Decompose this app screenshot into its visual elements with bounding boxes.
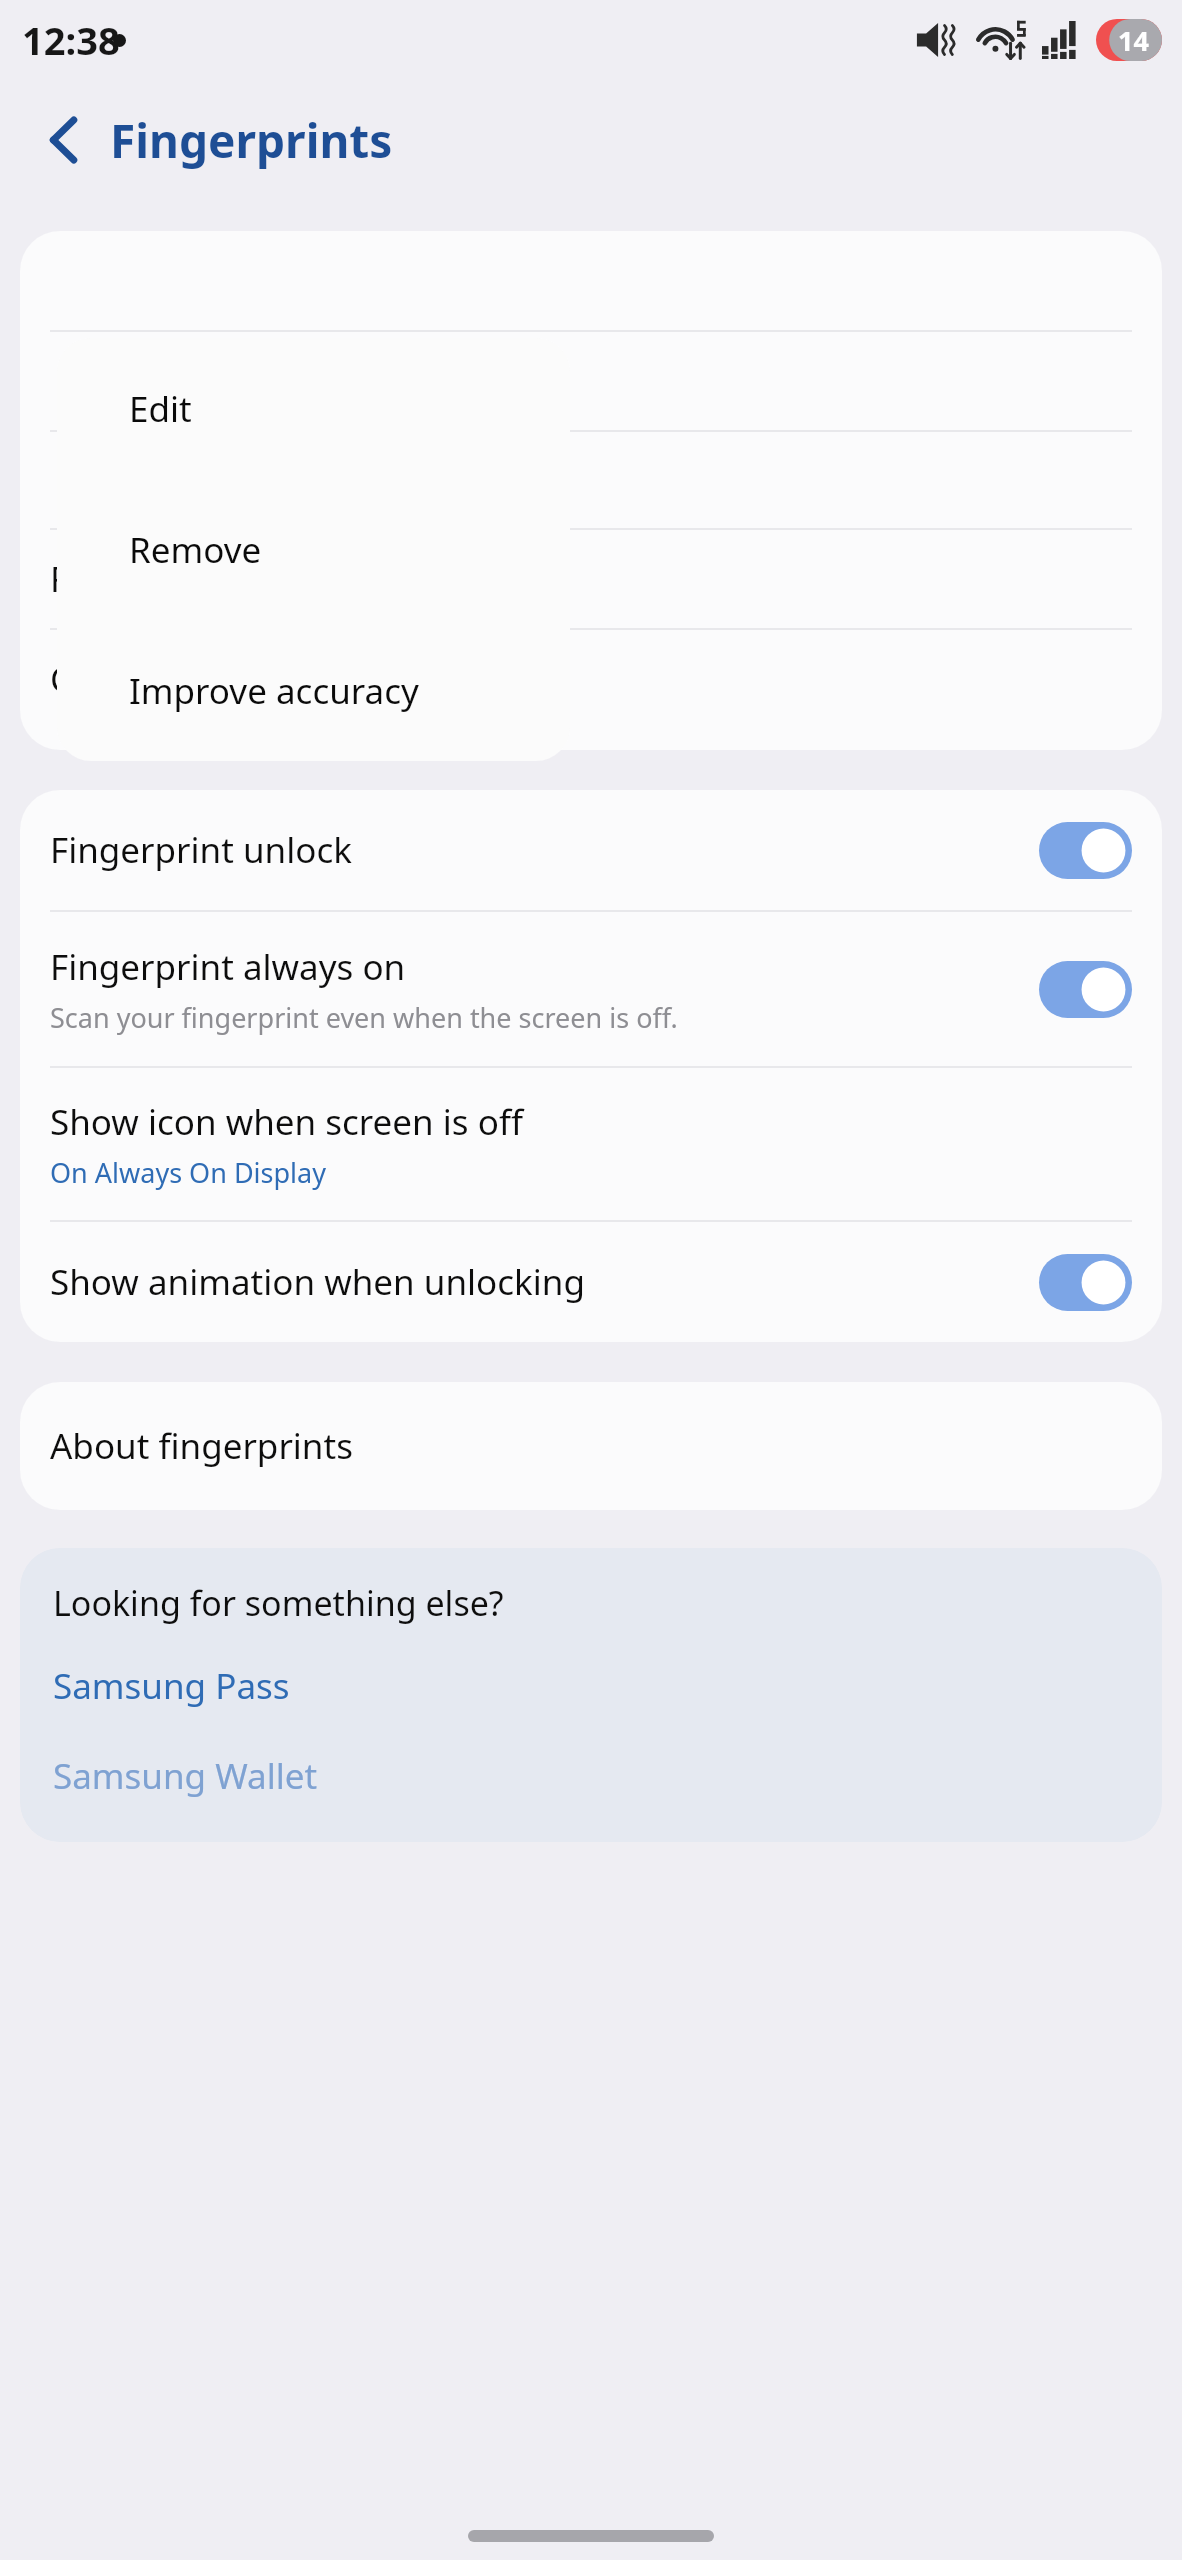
staticText: Fingerprint 4 xyxy=(50,555,263,603)
staticText: About fingerprints xyxy=(50,1422,353,1470)
staticText: Fingerprints xyxy=(110,109,393,172)
staticText: Improve accuracy xyxy=(129,667,419,715)
button[interactable]: Show icon when screen is off xyxy=(20,1068,1162,1220)
staticText: Samsung Wallet xyxy=(53,1752,318,1800)
button[interactable]: Samsung Pass xyxy=(20,1650,1162,1722)
button[interactable]: Fingerprint unlock xyxy=(20,790,1162,910)
button[interactable]: Fingerprint always on xyxy=(20,912,1162,1066)
button[interactable]: Check added fingerprints xyxy=(20,630,1162,728)
staticText: Show animation when unlocking xyxy=(50,1258,585,1306)
staticText: Fingerprint always on xyxy=(50,943,406,991)
button[interactable]: Back xyxy=(30,106,98,174)
button[interactable]: Remove xyxy=(57,479,570,620)
staticText: Edit xyxy=(129,385,192,433)
staticText: Scan your fingerprint even when the scre… xyxy=(50,999,678,1036)
staticText: Fingerprint unlock xyxy=(50,826,352,874)
staticText: 14 xyxy=(1118,22,1149,59)
button[interactable]: Edit xyxy=(57,338,570,479)
button[interactable]: Samsung Wallet xyxy=(20,1740,1162,1812)
button[interactable]: Show animation when unlocking xyxy=(20,1222,1162,1342)
staticText: Samsung Pass xyxy=(53,1662,290,1710)
staticText: Check added fingerprints xyxy=(50,655,466,703)
staticText: Looking for something else? xyxy=(53,1580,504,1626)
staticText: On Always On Display xyxy=(50,1154,326,1191)
button[interactable]: Improve accuracy xyxy=(57,620,570,761)
staticText: 12:38 xyxy=(22,14,120,66)
button[interactable]: Fingerprint 4 xyxy=(20,530,1162,628)
staticText: Remove xyxy=(129,526,262,574)
staticText: Show icon when screen is off xyxy=(50,1098,523,1146)
button[interactable]: About fingerprints xyxy=(20,1382,1162,1510)
